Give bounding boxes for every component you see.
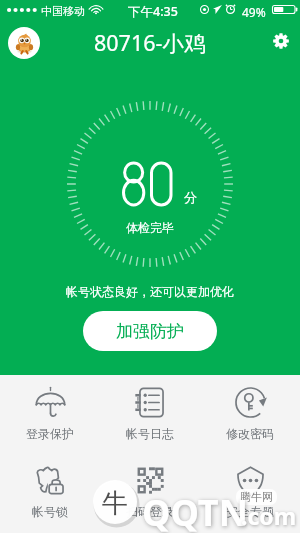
staticText: 牛 (102, 487, 128, 517)
staticText: 修改密码 (226, 426, 274, 441)
staticText: 中国移动 (41, 4, 85, 18)
button[interactable]: 帐号日志 (100, 386, 200, 441)
staticText: 49% (242, 4, 266, 20)
staticText: 下午4:35 (128, 3, 178, 20)
button[interactable]: 加强防护 (83, 311, 217, 351)
button[interactable]: 帐号锁 (0, 464, 100, 519)
button[interactable]: Settings (268, 28, 294, 54)
staticText: .com (241, 500, 297, 531)
staticText: 帐号锁 (32, 504, 68, 519)
staticText: 体检完毕 (126, 220, 174, 235)
staticText: 分 (184, 189, 197, 205)
button[interactable]: 安全专题 (200, 464, 300, 519)
staticText: 登录保护 (26, 426, 74, 441)
button[interactable]: Profile (8, 27, 40, 59)
staticText: 加强防护 (116, 321, 184, 342)
staticText: 80716-小鸡 (94, 28, 206, 57)
button[interactable]: 登录保护 (0, 386, 100, 441)
staticText: 帐号日志 (126, 426, 174, 441)
staticText: 帐号状态良好，还可以更加优化 (0, 284, 300, 299)
staticText: 安全专题 (226, 504, 274, 519)
staticText: 扫码登录 (126, 504, 174, 519)
staticText: 腾牛网 (240, 490, 273, 504)
button[interactable]: 修改密码 (200, 386, 300, 441)
staticText: QQTN (142, 488, 248, 533)
button[interactable]: 扫码登录 (100, 464, 200, 519)
